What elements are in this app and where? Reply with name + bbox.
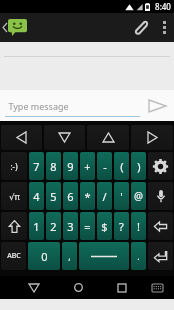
staticText: 8 [50,159,57,174]
staticText: 9 [67,159,74,174]
button[interactable]: 4 [29,182,44,210]
button[interactable]: arrowR [131,125,173,150]
staticText: @ [134,189,143,203]
staticText: . [137,250,140,262]
button[interactable]: Send [140,90,174,121]
button[interactable]: * [80,182,95,210]
button[interactable]: @ [131,182,146,210]
staticText: 4 [33,189,40,204]
button[interactable]: Navigate up [0,13,30,42]
button[interactable]: gear [148,152,173,180]
button[interactable]: Attach [124,13,154,42]
button[interactable]: Type message [0,90,140,121]
button[interactable]: ' [114,182,129,210]
staticText: ) [137,159,141,174]
button[interactable]: ? [114,212,129,240]
staticText: :-) [10,161,18,172]
staticText: ABC [7,251,21,261]
button[interactable]: Home [56,276,100,299]
button[interactable]: 1 [29,212,44,240]
button[interactable]: Back [12,276,56,299]
staticText: 1 [33,219,40,234]
button[interactable]: arrowL [1,125,42,150]
button[interactable]: 8 [46,152,61,180]
button[interactable]: = [80,212,95,240]
button[interactable]: Recent apps [100,276,144,299]
button[interactable]: Hide keyboard [144,276,170,299]
button[interactable]: shift [1,212,27,240]
staticText: 0 [41,249,48,264]
staticText: 8:40 [155,1,171,12]
staticText: 7 [33,159,40,174]
button[interactable]: 9 [63,152,78,180]
button[interactable]: 5 [46,182,61,210]
button[interactable]: 3 [63,212,78,240]
staticText: 2 [50,219,57,234]
button[interactable]: 0 [28,242,60,270]
button[interactable]: back [148,212,173,240]
button[interactable]: mic [148,182,173,210]
button[interactable]: $ [97,212,112,240]
button[interactable]: arrowU [87,125,129,150]
button[interactable]: + [80,152,95,180]
button[interactable]: 2 [46,212,61,240]
staticText: Type message [8,100,69,112]
staticText: - [103,159,107,174]
staticText: 3 [67,219,74,234]
staticText: $ [101,219,108,234]
button[interactable]: More options [154,13,174,42]
button[interactable]: ABC [1,242,26,270]
button[interactable]: ) [131,152,146,180]
staticText: + [84,159,91,174]
button[interactable]: enter [148,242,173,270]
staticText: / [102,189,107,204]
staticText: 6 [67,189,74,204]
button[interactable]: - [97,152,112,180]
staticText: * [84,189,91,204]
staticText: ' [120,189,123,204]
button[interactable]: 7 [29,152,44,180]
staticText: 5 [50,189,57,204]
staticText: ! [137,219,140,234]
button[interactable]: 6 [63,182,78,210]
staticText: , [68,250,71,262]
staticText: = [84,219,91,234]
button[interactable]: ! [131,212,146,240]
button[interactable]: √π [1,182,27,210]
staticText: √π [9,191,20,202]
staticText: ( [120,159,124,174]
button[interactable]: ( [114,152,129,180]
button[interactable]: space [79,242,129,270]
button[interactable]: , [62,242,77,270]
button[interactable]: / [97,182,112,210]
staticText: ? [119,219,124,234]
button[interactable]: :-) [1,152,27,180]
button[interactable]: arrowD [44,125,85,150]
button[interactable]: . [131,242,146,270]
